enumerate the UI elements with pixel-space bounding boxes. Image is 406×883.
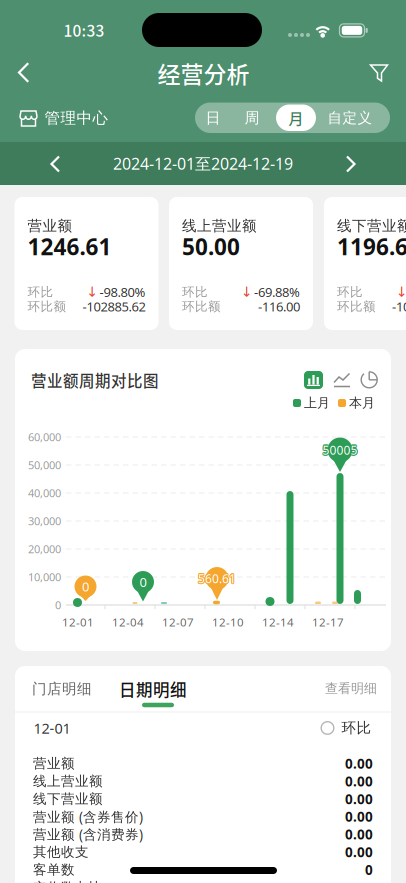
button[interactable]: 柱状图	[304, 371, 323, 389]
staticText: 营业额 (含券售价)	[33, 807, 143, 826]
staticText: 20,000	[28, 541, 61, 556]
staticText: 月	[288, 107, 303, 129]
staticText: 50005	[323, 443, 358, 459]
button[interactable]: 查看明细	[325, 680, 377, 697]
staticText: 0	[82, 578, 89, 595]
staticText: 50005	[322, 441, 357, 457]
staticText: 560.61	[197, 570, 235, 587]
button[interactable]: 饼图	[361, 371, 379, 389]
button[interactable]: 筛选	[365, 58, 393, 86]
staticText: 1246.61	[27, 231, 111, 262]
staticText: 50005	[322, 443, 357, 459]
staticText: 560.61	[198, 571, 236, 588]
staticText: 50005	[323, 441, 358, 457]
staticText: 0	[138, 573, 145, 591]
staticText: 0	[139, 572, 146, 590]
staticText: 0	[83, 578, 90, 596]
staticText: 0	[140, 572, 147, 590]
staticText: ↓	[86, 284, 98, 300]
staticText: 门店明细	[32, 680, 92, 698]
staticText: -116.00	[258, 298, 300, 315]
staticText: 0	[140, 574, 147, 592]
staticText: 0	[83, 578, 90, 595]
button[interactable]: 门店明细	[32, 680, 92, 698]
staticText: 0	[83, 577, 90, 594]
staticText: 日	[205, 109, 220, 127]
button[interactable]: 折线图	[333, 372, 351, 388]
button[interactable]: 周	[234, 103, 270, 133]
staticText: 0.00	[345, 772, 373, 790]
staticText: 环比	[341, 719, 371, 737]
button[interactable]: 下一周期	[337, 152, 361, 176]
staticText: 线上营业额	[182, 217, 257, 235]
staticText: 560.61	[199, 570, 237, 587]
staticText: 本月	[349, 395, 375, 411]
staticText: 0	[55, 597, 61, 612]
staticText: 营业额	[27, 217, 72, 235]
staticText: 0.00	[345, 843, 373, 861]
staticText: 营业额 (含消费券)	[33, 825, 143, 843]
staticText: 40,000	[28, 485, 61, 500]
staticText: 560.61	[198, 570, 236, 587]
staticText: 0.00	[345, 807, 373, 826]
staticText: 0	[139, 574, 146, 592]
button[interactable]: 管理中心	[17, 108, 108, 128]
staticText: 12-04	[112, 614, 144, 630]
staticText: 12-01	[62, 614, 94, 630]
staticText: 1196.61	[337, 231, 406, 262]
button[interactable]: 月	[276, 104, 316, 131]
staticText: -69.88%	[254, 283, 300, 301]
staticText: 线上营业额	[33, 773, 103, 790]
staticText: 0	[81, 578, 88, 595]
staticText: 周	[244, 109, 259, 127]
button[interactable]: 自定义	[322, 103, 378, 133]
staticText: 0	[81, 578, 88, 596]
staticText: 0	[139, 574, 146, 592]
staticText: 0	[139, 572, 146, 590]
button[interactable]: 环比开关	[320, 719, 371, 737]
staticText: 实收数占比	[33, 879, 103, 883]
staticText: 12-07	[162, 614, 194, 630]
staticText: 60,000	[28, 429, 61, 444]
staticText: 0.00	[345, 790, 373, 808]
staticText: 营业额周期对比图	[31, 369, 159, 391]
staticText: -102885.62	[82, 298, 145, 315]
staticText: 0	[141, 573, 148, 591]
staticText: 环比额	[27, 299, 66, 314]
staticText: 30,000	[28, 513, 61, 528]
button[interactable]: 日	[195, 103, 231, 133]
staticText: 50005	[324, 442, 359, 458]
staticText: 50005	[322, 443, 357, 459]
staticText: 管理中心	[44, 108, 108, 128]
staticText: 环比	[182, 284, 208, 300]
staticText: 12-01	[33, 718, 70, 738]
button[interactable]: 日期明细	[119, 677, 187, 701]
staticText: 12-10	[212, 614, 244, 630]
staticText: 50005	[322, 441, 357, 457]
staticText: 50005	[322, 442, 357, 458]
staticText: 环比	[27, 284, 53, 300]
staticText: 560.61	[199, 569, 237, 586]
staticText: 560.61	[199, 571, 237, 587]
staticText: 经营分析	[157, 56, 249, 90]
staticText: 12-17	[312, 614, 344, 630]
staticText: 自定义	[327, 109, 372, 127]
staticText: 0	[82, 579, 89, 596]
staticText: 环比额	[337, 299, 376, 314]
staticText: 0.00	[345, 825, 373, 843]
button[interactable]: 上一周期	[44, 152, 68, 176]
staticText: -98.80%	[99, 283, 145, 301]
staticText: 0	[139, 573, 146, 591]
staticText: 50,000	[28, 457, 61, 472]
staticText: 560.61	[197, 569, 235, 586]
staticText: 日期明细	[119, 677, 187, 701]
staticText: 线下营业额	[337, 217, 406, 235]
staticText: 50005	[321, 442, 356, 458]
staticText: 50.00	[182, 231, 240, 262]
button[interactable]: 返回	[11, 54, 47, 90]
staticText: 10,000	[28, 569, 61, 584]
staticText: ↓	[241, 284, 253, 300]
staticText: 环比	[337, 284, 363, 300]
staticText: 0.00	[345, 754, 373, 773]
